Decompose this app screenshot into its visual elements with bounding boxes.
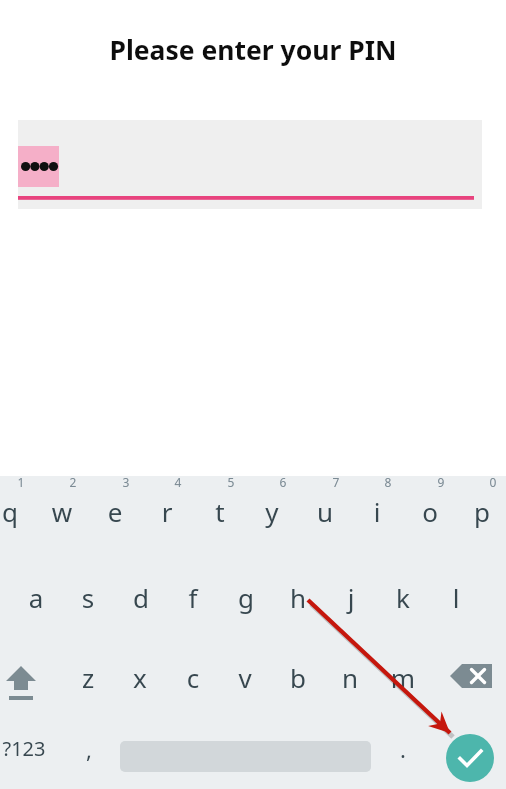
staticText: g	[206, 580, 286, 615]
button[interactable]	[167, 636, 219, 704]
button[interactable]	[246, 476, 298, 550]
button[interactable]	[377, 561, 429, 631]
button[interactable]	[115, 561, 167, 631]
button[interactable]	[62, 561, 114, 631]
button[interactable]: Shift	[0, 636, 48, 704]
staticText: 9	[401, 474, 481, 490]
staticText: 6	[243, 474, 323, 490]
button[interactable]	[0, 476, 36, 550]
button[interactable]	[299, 476, 351, 550]
button[interactable]: Backspace	[448, 636, 496, 704]
button[interactable]	[325, 561, 377, 631]
button[interactable]	[351, 476, 403, 550]
staticText: z	[48, 660, 128, 695]
button[interactable]	[66, 712, 114, 778]
staticText: u	[285, 494, 365, 529]
button[interactable]	[18, 120, 482, 209]
staticText: b	[258, 660, 338, 695]
staticText: e	[75, 494, 155, 529]
button[interactable]	[141, 476, 193, 550]
staticText: o	[390, 494, 470, 529]
button[interactable]	[0, 712, 60, 778]
button[interactable]	[114, 636, 166, 704]
staticText: n	[310, 660, 390, 695]
staticText: v	[205, 660, 285, 695]
button[interactable]	[36, 476, 88, 550]
button[interactable]	[167, 561, 219, 631]
staticText: q	[0, 494, 50, 529]
button[interactable]	[324, 636, 376, 704]
staticText: m	[363, 660, 443, 695]
staticText: k	[363, 580, 443, 615]
staticText: 3	[86, 474, 166, 490]
staticText: 1	[0, 474, 61, 490]
staticText: l	[416, 580, 496, 615]
staticText: 7	[296, 474, 376, 490]
button[interactable]	[272, 636, 324, 704]
staticText: f	[153, 580, 233, 615]
staticText: Please enter your PIN	[0, 32, 506, 68]
button[interactable]	[220, 561, 272, 631]
staticText: w	[22, 494, 102, 529]
button[interactable]	[404, 476, 456, 550]
staticText: 2	[33, 474, 113, 490]
button[interactable]	[62, 636, 114, 704]
staticText: a	[0, 580, 76, 615]
button[interactable]	[89, 476, 141, 550]
staticText: 4	[138, 474, 218, 490]
button[interactable]	[219, 636, 271, 704]
staticText: y	[232, 494, 312, 529]
staticText: 8	[348, 474, 428, 490]
staticText: 5	[191, 474, 271, 490]
staticText: ?123	[0, 735, 64, 762]
staticText: c	[153, 660, 233, 695]
staticText: p	[442, 494, 506, 529]
button[interactable]	[194, 476, 246, 550]
staticText: i	[337, 494, 417, 529]
button[interactable]	[380, 712, 424, 778]
button[interactable]: Done	[446, 734, 494, 782]
staticText: .	[363, 734, 443, 764]
staticText: j	[311, 580, 391, 615]
staticText: ,	[49, 734, 129, 764]
staticText: h	[258, 580, 338, 615]
button[interactable]	[377, 636, 429, 704]
staticText: r	[127, 494, 207, 529]
button[interactable]	[456, 476, 506, 550]
staticText: 0	[453, 474, 506, 490]
button[interactable]	[272, 561, 324, 631]
button[interactable]	[10, 561, 62, 631]
button[interactable]	[430, 561, 482, 631]
staticText: t	[180, 494, 260, 529]
staticText: x	[100, 660, 180, 695]
staticText: s	[48, 580, 128, 615]
staticText: d	[101, 580, 181, 615]
